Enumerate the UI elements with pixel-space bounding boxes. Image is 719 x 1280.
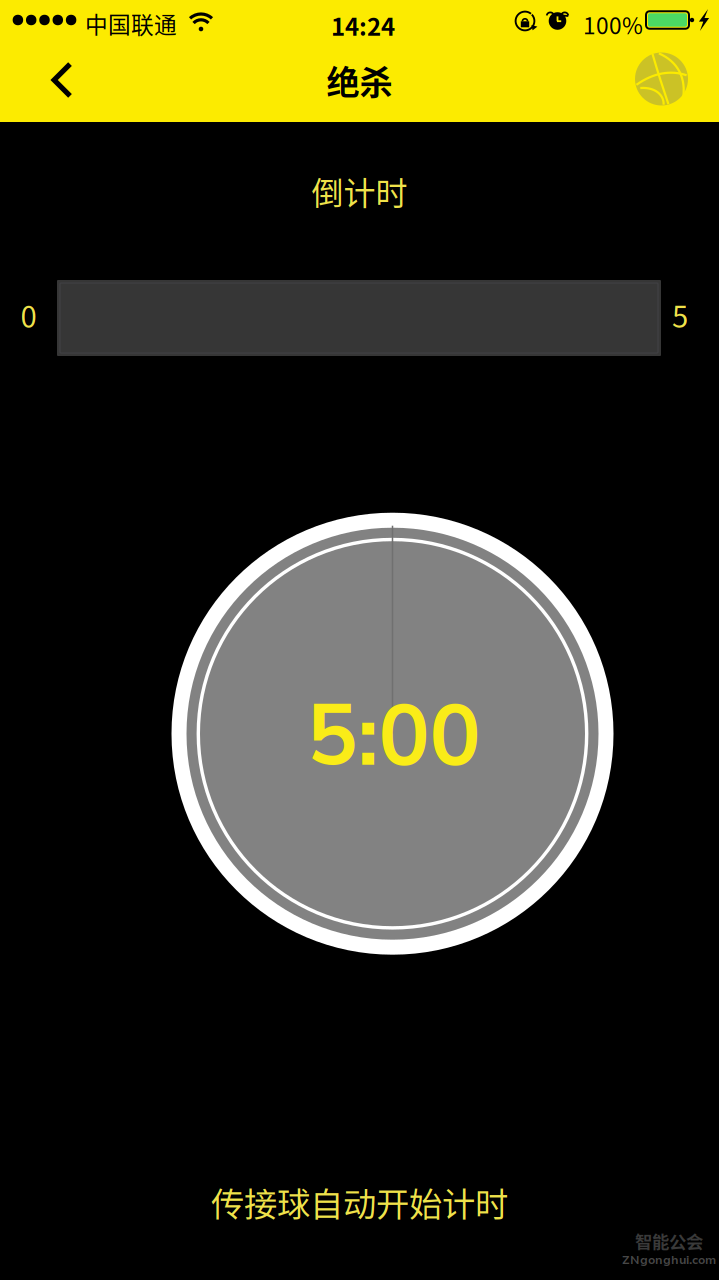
staticText: 传接球自动开始计时 bbox=[211, 1178, 508, 1226]
staticText: 100% bbox=[583, 8, 643, 41]
staticText: 绝杀 bbox=[326, 56, 392, 104]
button[interactable]: 开始计时 5:00 bbox=[171, 513, 613, 955]
staticText: 倒计时 bbox=[311, 168, 407, 214]
staticText: 智能公会 bbox=[635, 1228, 703, 1254]
staticText: ZNgonghui.com bbox=[622, 1252, 716, 1268]
button[interactable]: Basketball bbox=[626, 44, 719, 122]
staticText: 中国联通 bbox=[85, 7, 177, 40]
staticText: 14:24 bbox=[331, 8, 395, 43]
staticText: 0 bbox=[20, 294, 36, 336]
staticText: 5 bbox=[672, 294, 688, 336]
staticText: 5:00 bbox=[306, 678, 480, 795]
button[interactable]: Back bbox=[0, 44, 88, 122]
